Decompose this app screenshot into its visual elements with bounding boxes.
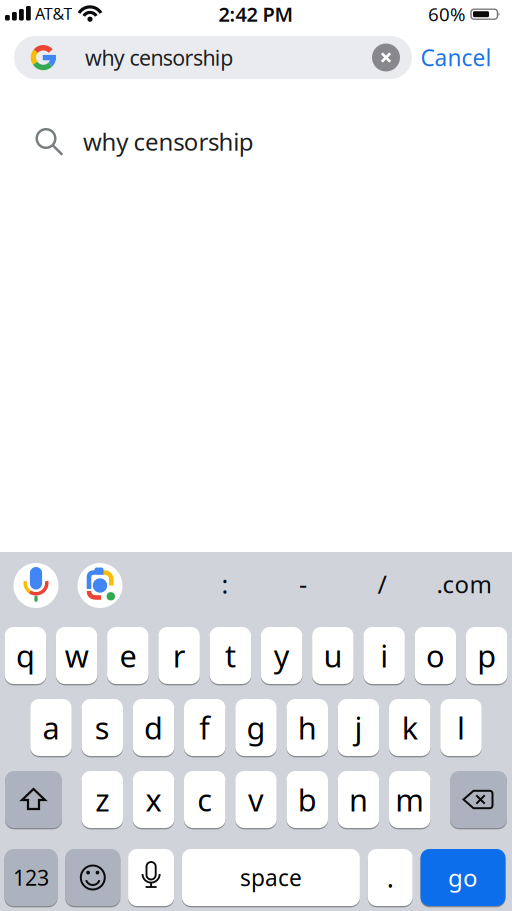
button[interactable]: f	[184, 699, 225, 756]
button[interactable]: -	[283, 564, 323, 604]
staticText: e	[119, 635, 136, 676]
staticText: space	[240, 862, 302, 892]
button[interactable]: 123	[4, 849, 57, 906]
button[interactable]: l	[440, 699, 482, 756]
button[interactable]	[0, 0, 512, 911]
staticText: .	[387, 860, 394, 895]
button[interactable]	[128, 849, 174, 906]
staticText: r	[173, 635, 186, 676]
staticText: k	[402, 707, 418, 748]
staticText: :	[221, 567, 228, 601]
button[interactable]: space	[182, 849, 360, 906]
staticText: m	[395, 779, 424, 820]
staticText: q	[16, 635, 35, 676]
button[interactable]	[0, 0, 512, 911]
button[interactable]: p	[466, 627, 507, 684]
staticText: j	[354, 707, 362, 748]
button[interactable]: b	[286, 771, 328, 828]
button[interactable]: k	[389, 699, 430, 756]
staticText: 123	[13, 863, 49, 892]
staticText: d	[144, 707, 163, 748]
staticText: Cancel	[420, 42, 491, 72]
button[interactable]	[5, 771, 62, 828]
staticText: go	[448, 862, 478, 893]
staticText: l	[457, 707, 465, 748]
button[interactable]: n	[338, 771, 379, 828]
button[interactable]: /	[362, 564, 402, 604]
button[interactable]: go	[420, 849, 505, 906]
staticText: -	[299, 567, 307, 601]
staticText: 60%	[428, 2, 466, 26]
button[interactable]: h	[286, 699, 328, 756]
button[interactable]: v	[235, 771, 277, 828]
button[interactable]: o	[415, 627, 456, 684]
staticText: /	[377, 567, 386, 601]
button[interactable]: Cancel	[416, 36, 496, 79]
button[interactable]: i	[363, 627, 405, 684]
button[interactable]: s	[81, 699, 123, 756]
staticText: b	[298, 779, 317, 820]
staticText: .com	[436, 568, 491, 600]
staticText: h	[298, 707, 317, 748]
button[interactable]: y	[261, 627, 302, 684]
staticText: why censorship	[85, 43, 233, 72]
staticText: y	[274, 635, 290, 676]
staticText: x	[145, 779, 161, 820]
staticText: AT&T	[35, 3, 72, 24]
staticText: p	[477, 635, 496, 676]
staticText: 2:42 PM	[218, 1, 293, 27]
button[interactable]: .com	[434, 564, 494, 604]
button[interactable]: m	[389, 771, 430, 828]
staticText: t	[225, 635, 236, 676]
staticText: g	[246, 707, 265, 748]
staticText: u	[323, 635, 342, 676]
staticText: s	[95, 707, 110, 748]
staticText: v	[248, 779, 264, 820]
button[interactable]	[0, 0, 512, 911]
staticText: f	[199, 707, 210, 748]
button[interactable]: x	[133, 771, 174, 828]
button[interactable]: :	[205, 564, 245, 604]
button[interactable]: why censorship	[0, 0, 512, 911]
button[interactable]: z	[81, 771, 123, 828]
button[interactable]	[14, 36, 412, 79]
button[interactable]: u	[312, 627, 354, 684]
button[interactable]	[450, 771, 507, 828]
button[interactable]: j	[338, 699, 379, 756]
button[interactable]: g	[235, 699, 277, 756]
staticText: z	[95, 779, 109, 820]
button[interactable]	[65, 849, 120, 906]
button[interactable]: a	[30, 699, 72, 756]
button[interactable]: c	[184, 771, 225, 828]
button[interactable]: w	[56, 627, 97, 684]
staticText: n	[349, 779, 368, 820]
staticText: c	[197, 779, 212, 820]
staticText: i	[380, 635, 388, 676]
staticText: w	[65, 635, 89, 676]
staticText: o	[426, 635, 445, 676]
button[interactable]: r	[158, 627, 200, 684]
button[interactable]: .	[368, 849, 413, 906]
staticText: why censorship	[83, 126, 254, 157]
button[interactable]: e	[107, 627, 149, 684]
button[interactable]: d	[133, 699, 174, 756]
button[interactable]: q	[5, 627, 46, 684]
staticText: a	[42, 707, 59, 748]
button[interactable]: t	[210, 627, 251, 684]
